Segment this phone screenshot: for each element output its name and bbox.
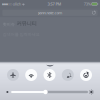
button[interactable]: Portrait Orientation Lock [80,69,92,81]
staticText: pann.nate.com [37,10,62,15]
button[interactable]: Do Not Disturb [62,69,74,81]
button[interactable]: Bluetooth [43,69,55,81]
button[interactable]: Airplane Mode [7,69,19,81]
staticText: 핫이슈 [3,22,15,27]
button[interactable]: Reload [91,10,97,16]
staticText: 73% [84,1,91,7]
button[interactable]: Brightness [11,89,88,94]
staticText: ●●●○○ [2,2,12,5]
staticText: 3:57 PM [47,1,61,7]
staticText: olleh [12,1,22,7]
staticText: 커뮤니티 [17,20,37,27]
button[interactable]: Wi-Fi [25,69,37,81]
